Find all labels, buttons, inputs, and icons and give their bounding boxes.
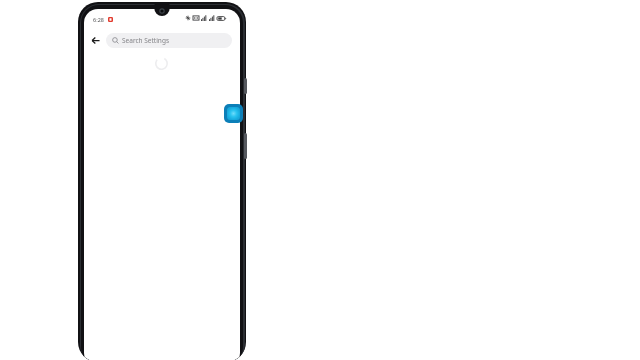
staticText: 6:28 xyxy=(93,16,104,23)
staticText: Search Settings xyxy=(122,36,169,45)
button[interactable]: Accessibility shortcut xyxy=(224,104,243,123)
button[interactable]: Back xyxy=(87,32,104,49)
button[interactable]: Search Settings xyxy=(106,33,232,48)
